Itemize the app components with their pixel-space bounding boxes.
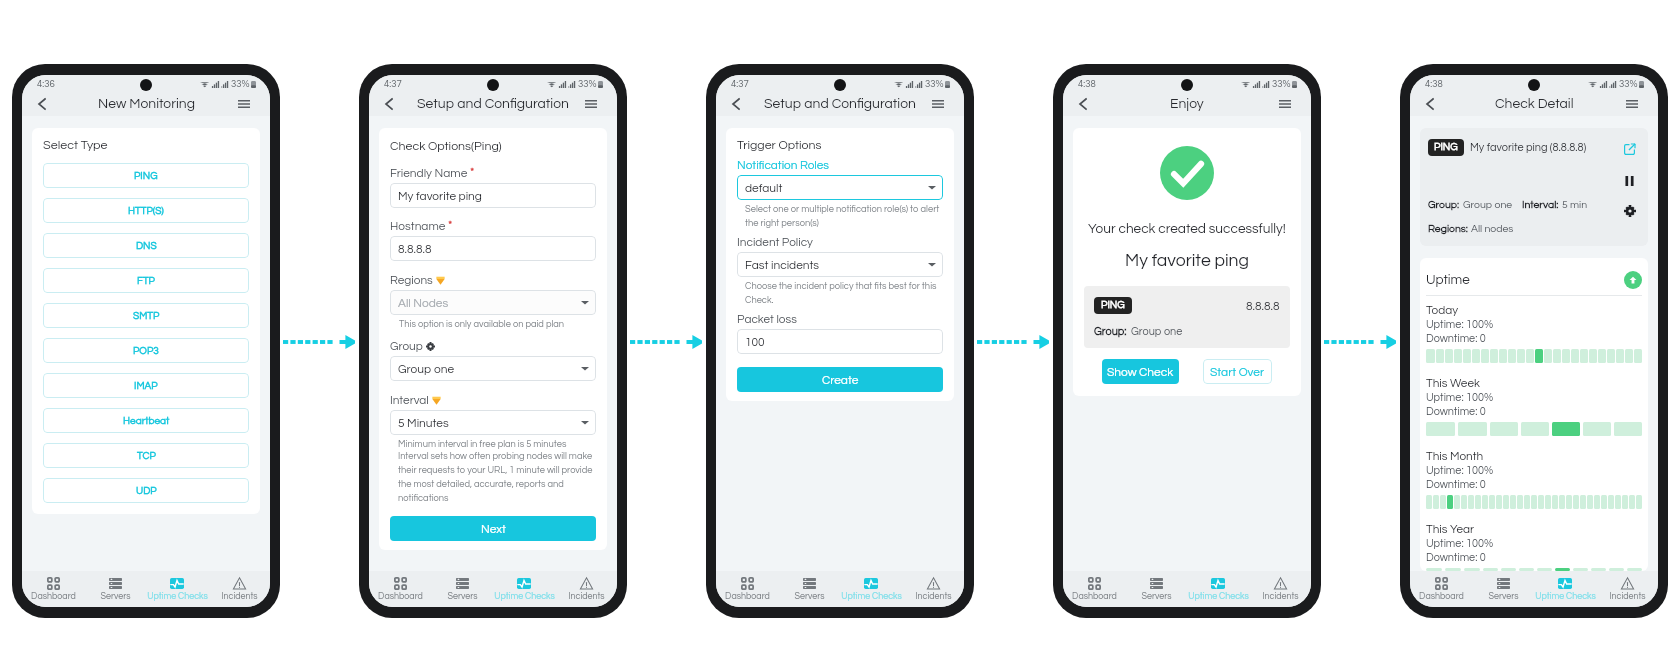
staticText: Downtime: 0 bbox=[1426, 479, 1486, 490]
button[interactable]: Dashboard bbox=[1063, 571, 1125, 607]
staticText: Packet loss bbox=[737, 313, 797, 325]
staticText: Minimum interval in free plan is 5 minut… bbox=[398, 439, 567, 449]
staticText: Uptime Checks bbox=[1535, 592, 1596, 601]
button[interactable]: Back bbox=[1074, 95, 1092, 113]
staticText: Friendly Name bbox=[390, 167, 468, 179]
button[interactable]: Uptime Checks bbox=[1187, 571, 1249, 607]
staticText: Downtime: 0 bbox=[1426, 552, 1486, 563]
staticText: 33% bbox=[925, 79, 944, 89]
staticText: Incidents bbox=[915, 592, 952, 601]
staticText: All Nodes bbox=[398, 297, 449, 309]
button[interactable]: Incidents bbox=[902, 571, 964, 607]
staticText: UDP bbox=[136, 486, 157, 496]
staticText: Group one bbox=[1463, 199, 1513, 210]
button[interactable]: PING bbox=[43, 163, 249, 188]
button[interactable]: Servers bbox=[84, 571, 146, 607]
button[interactable]: Uptime Checks bbox=[493, 571, 555, 607]
button[interactable]: 5 Minutes bbox=[398, 410, 589, 435]
button[interactable]: Servers bbox=[1125, 571, 1187, 607]
button[interactable]: Menu bbox=[929, 95, 947, 113]
staticText: 4:37 bbox=[384, 79, 402, 89]
button[interactable]: Show Check bbox=[1102, 359, 1179, 384]
staticText: Dashboard bbox=[31, 592, 76, 601]
button[interactable]: Menu bbox=[1623, 95, 1641, 113]
staticText: Select one or multiple notification role… bbox=[745, 204, 943, 228]
staticText: Group: bbox=[1094, 326, 1127, 337]
button[interactable]: 100 bbox=[745, 329, 935, 354]
staticText: Dashboard bbox=[1072, 592, 1117, 601]
button[interactable]: 8.8.8.8 bbox=[398, 236, 588, 261]
button[interactable]: default bbox=[745, 175, 936, 200]
staticText: Hostname bbox=[390, 220, 446, 232]
staticText: Regions bbox=[390, 274, 433, 286]
button[interactable]: Incidents bbox=[208, 571, 270, 607]
staticText: This Month bbox=[1426, 450, 1484, 462]
button[interactable]: Incidents bbox=[555, 571, 617, 607]
button[interactable]: Servers bbox=[431, 571, 493, 607]
button[interactable]: Incidents bbox=[1596, 571, 1658, 607]
staticText: Setup and Configuration bbox=[764, 97, 916, 111]
button[interactable]: Status up bbox=[1624, 271, 1642, 289]
staticText: 8.8.8.8 bbox=[1246, 300, 1280, 312]
button[interactable]: SMTP bbox=[43, 303, 249, 328]
staticText: Incidents bbox=[1262, 592, 1299, 601]
button[interactable]: Dashboard bbox=[22, 571, 84, 607]
staticText: Select Type bbox=[43, 139, 108, 152]
staticText: Group one bbox=[1131, 326, 1183, 337]
staticText: 33% bbox=[231, 79, 250, 89]
button[interactable]: Incidents bbox=[1249, 571, 1311, 607]
button[interactable]: Dashboard bbox=[716, 571, 778, 607]
button[interactable]: Uptime Checks bbox=[146, 571, 208, 607]
button[interactable]: Servers bbox=[1472, 571, 1534, 607]
button[interactable]: Back bbox=[727, 95, 745, 113]
button[interactable]: UDP bbox=[43, 478, 249, 503]
staticText: 4:38 bbox=[1078, 79, 1096, 89]
button[interactable]: All Nodes bbox=[398, 290, 589, 315]
staticText: Uptime: 100% bbox=[1426, 319, 1494, 330]
staticText: Dashboard bbox=[725, 592, 770, 601]
button[interactable]: Back bbox=[1421, 95, 1439, 113]
button[interactable]: POP3 bbox=[43, 338, 249, 363]
staticText: My favorite ping (8.8.8.8) bbox=[1470, 142, 1587, 153]
button[interactable]: Uptime Checks bbox=[840, 571, 902, 607]
button[interactable]: Menu bbox=[235, 95, 253, 113]
staticText: This Year bbox=[1426, 523, 1475, 535]
button[interactable]: Dashboard bbox=[1410, 571, 1472, 607]
staticText: Uptime Checks bbox=[1188, 592, 1249, 601]
button[interactable]: Heartbeat bbox=[43, 408, 249, 433]
button[interactable]: Dashboard bbox=[369, 571, 431, 607]
staticText: DNS bbox=[136, 241, 157, 251]
staticText: Regions: bbox=[1428, 223, 1468, 234]
button[interactable]: TCP bbox=[43, 443, 249, 468]
button[interactable]: DNS bbox=[43, 233, 249, 258]
button[interactable]: Menu bbox=[1276, 95, 1294, 113]
button[interactable]: HTTP(S) bbox=[43, 198, 249, 223]
staticText: Dashboard bbox=[1419, 592, 1464, 601]
button[interactable]: Create bbox=[737, 367, 943, 392]
button[interactable]: Next bbox=[390, 516, 596, 541]
button[interactable]: Back bbox=[380, 95, 398, 113]
staticText: 8.8.8.8 bbox=[398, 243, 432, 255]
staticText: Group bbox=[390, 340, 423, 352]
staticText: Servers bbox=[794, 592, 825, 601]
button[interactable]: Back bbox=[33, 95, 51, 113]
button[interactable]: Servers bbox=[778, 571, 840, 607]
staticText: 33% bbox=[1272, 79, 1291, 89]
button[interactable]: Open in new bbox=[1623, 143, 1636, 156]
staticText: Check Detail bbox=[1495, 97, 1574, 111]
button[interactable]: Uptime Checks bbox=[1534, 571, 1596, 607]
button[interactable]: IMAP bbox=[43, 373, 249, 398]
staticText: 4:38 bbox=[1425, 79, 1443, 89]
button[interactable]: Fast incidents bbox=[745, 252, 936, 277]
button[interactable]: Menu bbox=[582, 95, 600, 113]
button[interactable]: Start Over bbox=[1203, 359, 1272, 384]
staticText: My favorite ping bbox=[1125, 252, 1249, 270]
button[interactable]: Group one bbox=[398, 356, 589, 381]
button[interactable]: FTP bbox=[43, 268, 249, 293]
staticText: 33% bbox=[578, 79, 597, 89]
staticText: Incidents bbox=[1609, 592, 1646, 601]
button[interactable]: Settings bbox=[1623, 204, 1636, 217]
staticText: Incident Policy bbox=[737, 236, 813, 248]
button[interactable]: My favorite ping bbox=[398, 183, 588, 208]
button[interactable]: Pause bbox=[1623, 174, 1636, 187]
